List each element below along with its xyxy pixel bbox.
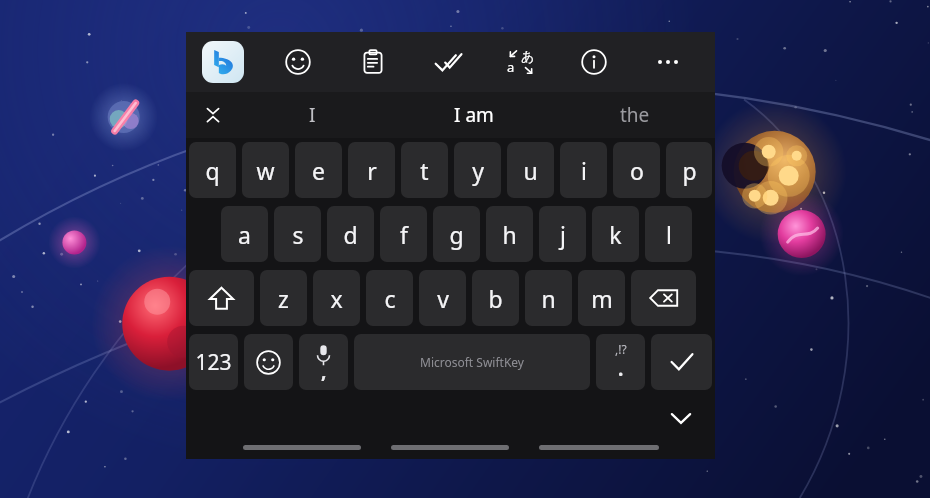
button[interactable]: Expand suggestions <box>194 96 232 134</box>
button[interactable]: More options <box>648 42 688 82</box>
button[interactable]: r <box>348 142 395 198</box>
button[interactable]: o <box>613 142 660 198</box>
staticText: ,!? <box>615 341 627 357</box>
staticText: l <box>666 219 672 250</box>
button[interactable]: x <box>313 270 360 326</box>
button[interactable]: w <box>242 142 289 198</box>
staticText: i <box>581 155 587 186</box>
button[interactable]: Space <box>354 334 590 390</box>
staticText: I <box>309 102 316 128</box>
button[interactable]: v <box>419 270 466 326</box>
staticText: a <box>507 58 515 76</box>
staticText: n <box>541 283 556 314</box>
button[interactable]: g <box>433 206 480 262</box>
button[interactable]: i <box>560 142 607 198</box>
staticText: w <box>256 155 275 186</box>
button[interactable]: z <box>260 270 307 326</box>
button[interactable]: Hide keyboard <box>661 398 701 438</box>
staticText: q <box>205 155 220 186</box>
staticText: z <box>278 283 289 314</box>
button[interactable]: c <box>366 270 413 326</box>
staticText: . <box>618 356 624 382</box>
staticText: m <box>591 283 613 314</box>
button[interactable]: p <box>666 142 712 198</box>
button[interactable]: Backspace <box>631 270 696 326</box>
staticText: h <box>502 219 517 250</box>
button[interactable]: f <box>380 206 427 262</box>
staticText: e <box>312 155 325 186</box>
button[interactable]: Translate <box>501 42 541 82</box>
staticText: あ <box>521 48 535 64</box>
button[interactable]: n <box>525 270 572 326</box>
button[interactable]: a <box>221 206 268 262</box>
button[interactable]: j <box>539 206 586 262</box>
staticText: g <box>449 219 464 250</box>
button[interactable]: k <box>592 206 639 262</box>
button[interactable]: Info <box>574 42 614 82</box>
button[interactable]: s <box>274 206 321 262</box>
button[interactable]: t <box>401 142 448 198</box>
button[interactable]: e <box>295 142 342 198</box>
staticText: c <box>384 283 396 314</box>
staticText: u <box>523 155 538 186</box>
button[interactable]: l <box>645 206 692 262</box>
button[interactable]: h <box>486 206 533 262</box>
staticText: f <box>400 219 408 250</box>
button[interactable]: y <box>454 142 501 198</box>
button[interactable]: Punctuation <box>596 334 645 390</box>
button[interactable]: u <box>507 142 554 198</box>
staticText: , <box>321 358 327 384</box>
staticText: s <box>292 219 304 250</box>
staticText: I am <box>454 102 494 128</box>
staticText: Microsoft SwiftKey <box>420 354 524 370</box>
staticText: 123 <box>195 348 232 377</box>
button[interactable]: b <box>472 270 519 326</box>
staticText: v <box>437 283 449 314</box>
button[interactable]: Enter <box>651 334 712 390</box>
staticText: b <box>488 283 503 314</box>
staticText: j <box>560 219 566 250</box>
button[interactable]: Emoji <box>278 42 318 82</box>
button[interactable]: the <box>554 92 715 138</box>
button[interactable]: Shift <box>189 270 254 326</box>
staticText: d <box>343 219 358 250</box>
button[interactable]: Bing <box>202 41 244 83</box>
button[interactable]: m <box>578 270 625 326</box>
button[interactable]: 123 <box>189 334 238 390</box>
button[interactable]: I <box>232 92 393 138</box>
button[interactable]: Clipboard <box>353 42 393 82</box>
staticText: t <box>420 155 429 186</box>
button[interactable]: q <box>189 142 236 198</box>
staticText: k <box>609 219 622 250</box>
staticText: y <box>472 155 484 186</box>
button[interactable]: d <box>327 206 374 262</box>
button[interactable]: I am <box>393 92 554 138</box>
staticText: o <box>630 155 644 186</box>
staticText: the <box>620 102 650 128</box>
button[interactable]: Tasks <box>428 42 468 82</box>
staticText: a <box>238 219 251 250</box>
button[interactable]: Voice input and comma <box>299 334 348 390</box>
button[interactable]: Emoji <box>244 334 293 390</box>
staticText: r <box>367 155 377 186</box>
staticText: p <box>682 155 697 186</box>
staticText: x <box>330 283 343 314</box>
